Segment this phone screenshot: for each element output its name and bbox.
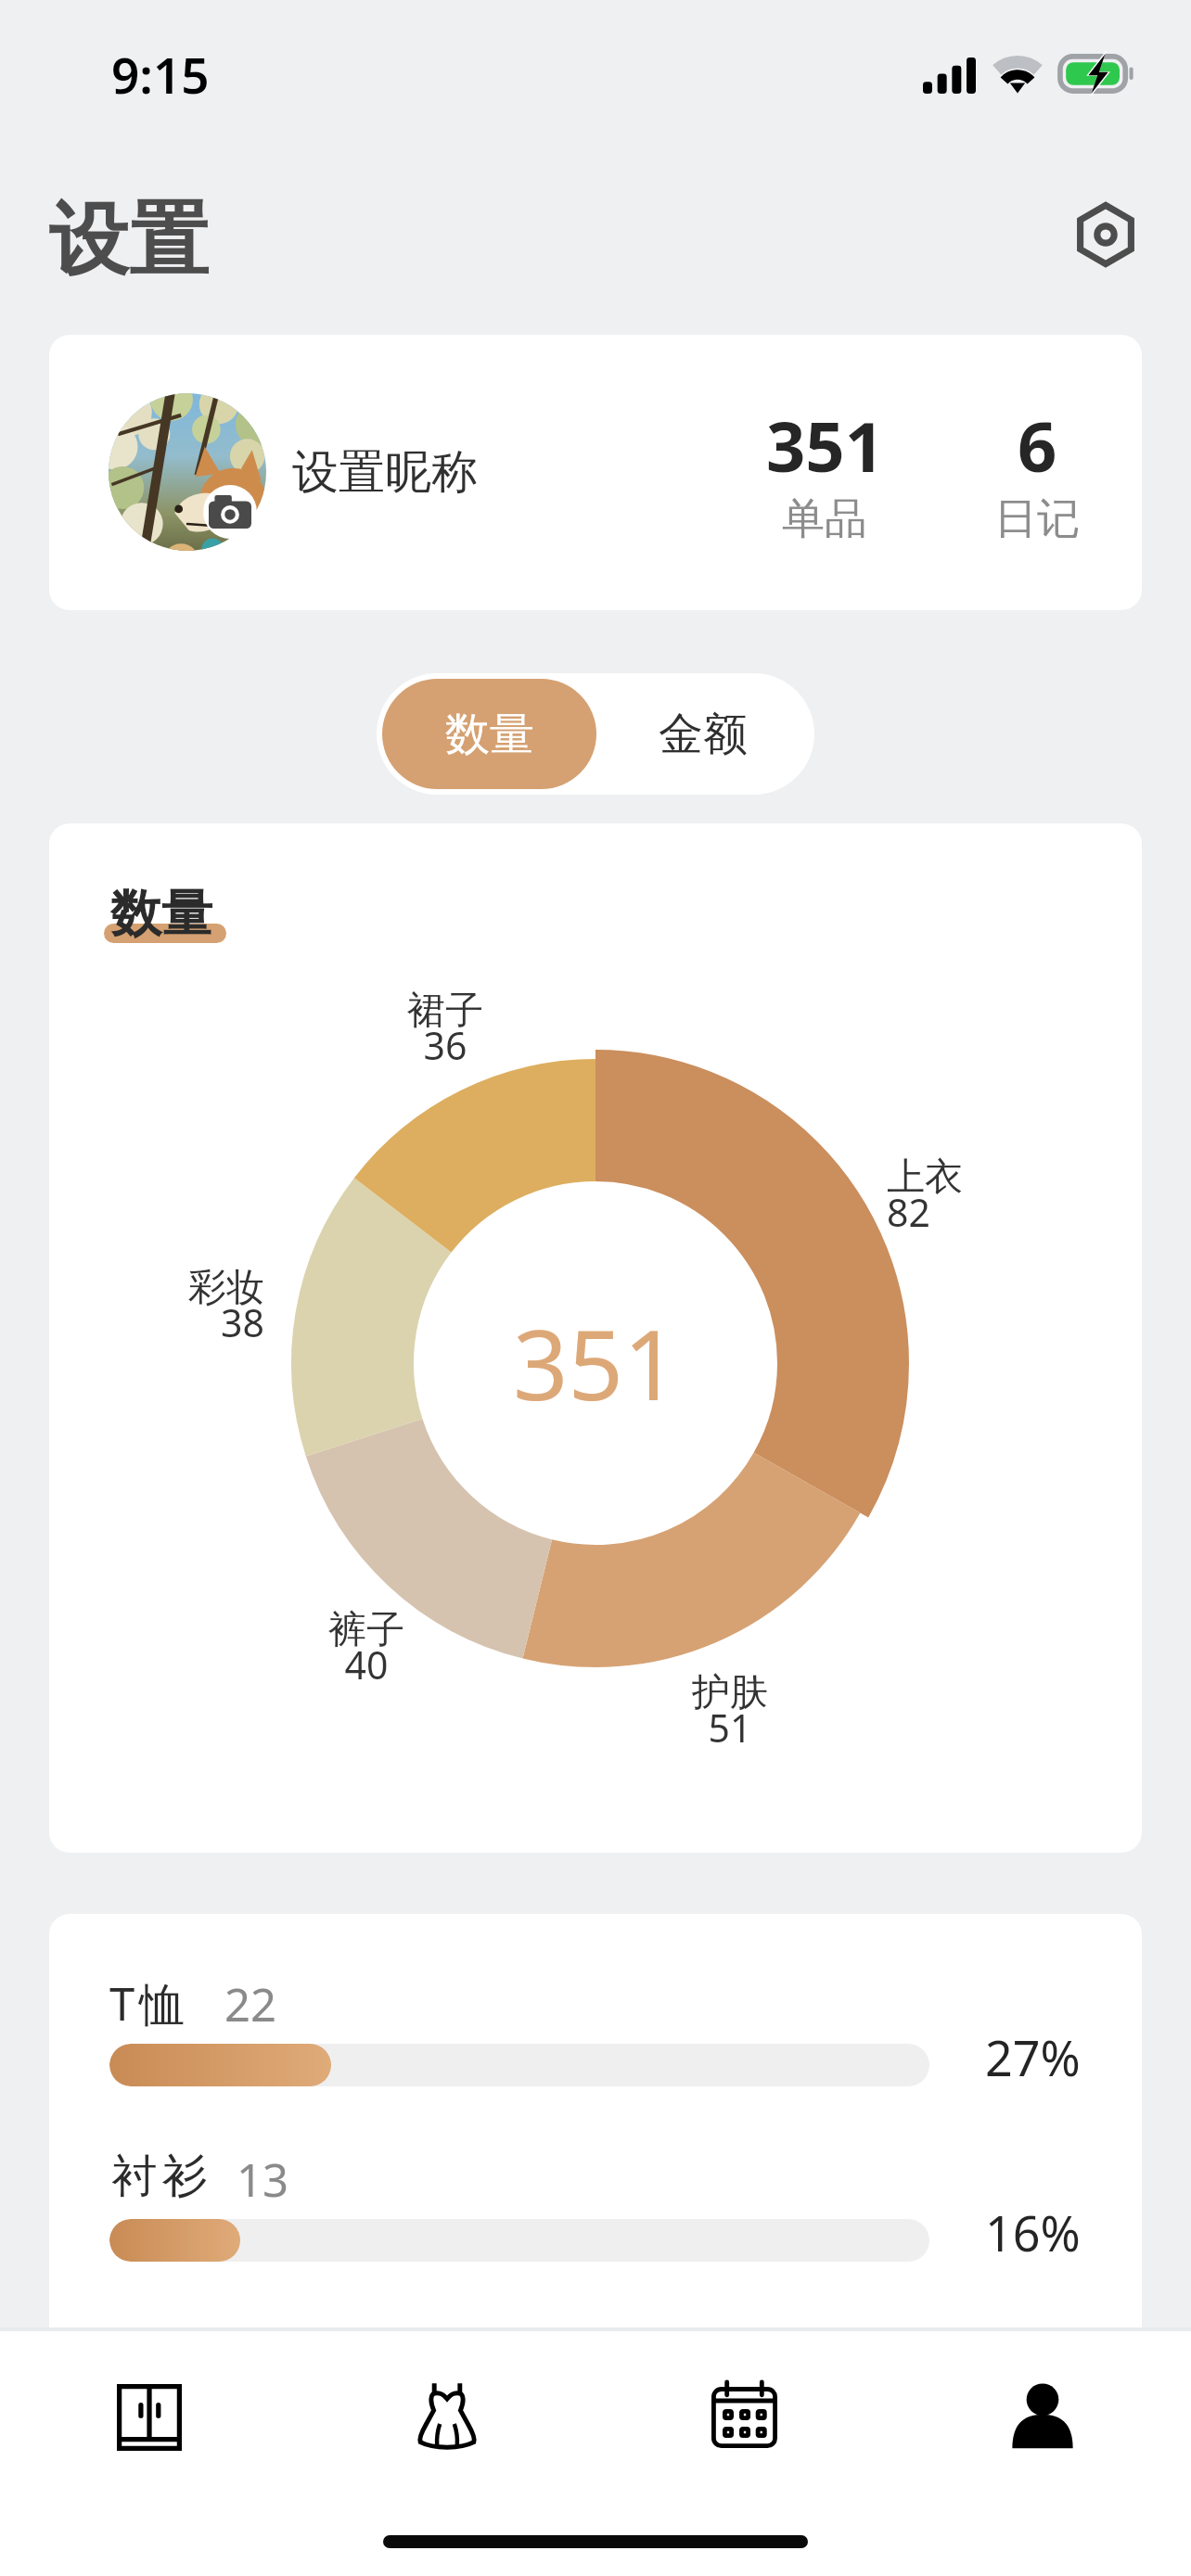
staticText: 9:15 bbox=[111, 41, 210, 108]
staticText: 裙子 36 bbox=[362, 987, 529, 1071]
staticText: T恤 bbox=[109, 1972, 190, 2034]
button[interactable]: 金额 bbox=[596, 679, 809, 789]
staticText: 金额 bbox=[659, 707, 748, 762]
staticText: 16% bbox=[985, 2200, 1081, 2265]
staticText: 彩妆 38 bbox=[97, 1264, 264, 1348]
button[interactable]: Calendar bbox=[595, 2331, 893, 2498]
staticText: 22 bbox=[224, 1973, 277, 2035]
staticText: 裤子 40 bbox=[283, 1606, 450, 1690]
staticText: 护肤 51 bbox=[647, 1669, 813, 1753]
button[interactable]: 数量 bbox=[382, 679, 596, 789]
staticText: 351 bbox=[766, 399, 884, 492]
button[interactable]: Change avatar bbox=[49, 335, 1142, 610]
staticText: 数量 bbox=[445, 707, 534, 762]
staticText: 衬衫 bbox=[109, 2148, 210, 2205]
button[interactable]: Settings bbox=[1063, 192, 1148, 277]
staticText: 27% bbox=[985, 2024, 1081, 2090]
button[interactable]: Change avatar bbox=[203, 485, 257, 539]
staticText: 数量 bbox=[110, 882, 212, 946]
staticText: 设置 bbox=[49, 190, 209, 290]
staticText: 上衣 82 bbox=[887, 1154, 1054, 1238]
staticText: 6 bbox=[1018, 399, 1057, 492]
button[interactable]: Wardrobe bbox=[0, 2331, 298, 2498]
staticText: 日记 bbox=[994, 492, 1080, 546]
button[interactable]: Clothes bbox=[298, 2331, 595, 2498]
staticText: 351 bbox=[513, 1297, 679, 1429]
button[interactable]: Profile bbox=[893, 2331, 1191, 2498]
staticText: 设置昵称 bbox=[292, 443, 478, 502]
staticText: 13 bbox=[237, 2149, 289, 2211]
staticText: 单品 bbox=[782, 492, 867, 546]
